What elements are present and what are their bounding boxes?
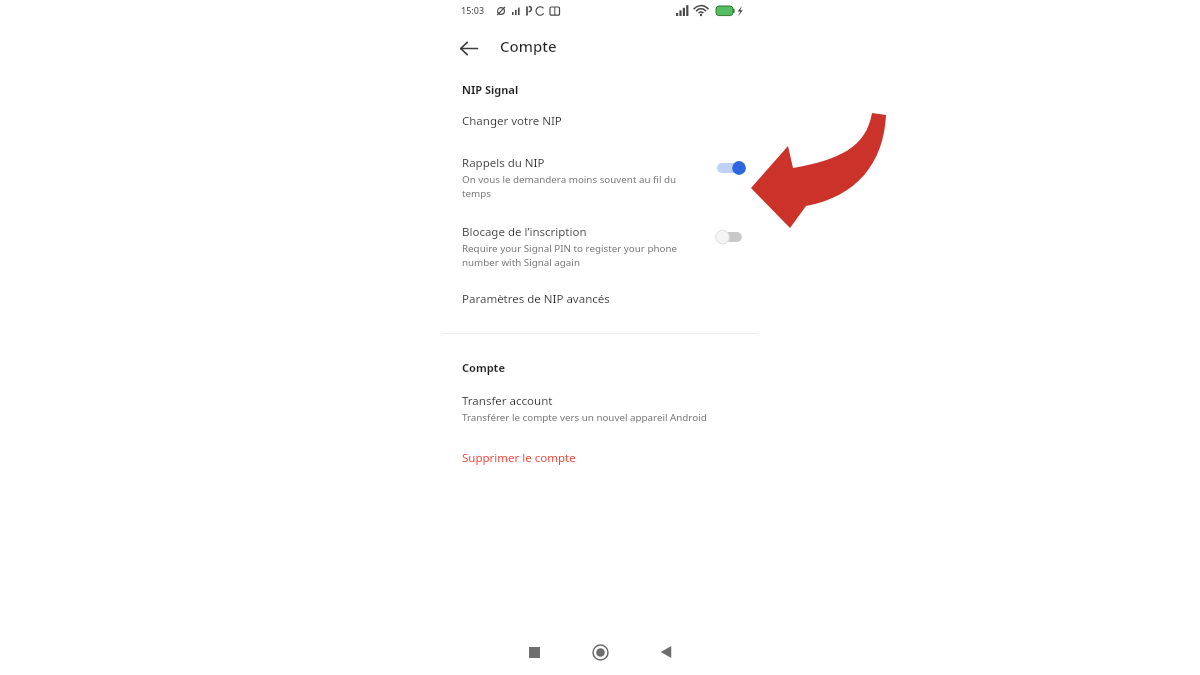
- button[interactable]: Back: [652, 638, 680, 666]
- button[interactable]: Supprimer le compte: [440, 428, 760, 472]
- button[interactable]: Transfer account: [440, 375, 760, 428]
- button[interactable]: Blocage de l’inscription: [440, 204, 760, 273]
- button[interactable]: Home: [586, 638, 614, 666]
- staticText: Compte: [462, 360, 505, 375]
- staticText: Transférer le compte vers un nouvel appa…: [462, 411, 707, 424]
- staticText: Transfer account: [462, 393, 553, 409]
- staticText: Blocage de l’inscription: [462, 224, 587, 240]
- staticText: Require your Signal PIN to register your…: [462, 242, 707, 269]
- staticText: Paramètres de NIP avancés: [462, 291, 610, 307]
- staticText: Compte: [500, 36, 557, 56]
- staticText: Supprimer le compte: [462, 450, 576, 466]
- button[interactable]: Back: [449, 29, 487, 67]
- staticText: NIP Signal: [462, 82, 519, 97]
- button[interactable]: Paramètres de NIP avancés: [440, 273, 760, 311]
- button[interactable]: Recent apps: [520, 638, 548, 666]
- staticText: 15:03: [461, 4, 485, 16]
- staticText: Rappels du NIP: [462, 155, 545, 171]
- staticText: On vous le demandera moins souvent au fi…: [462, 173, 707, 200]
- button[interactable]: Changer votre NIP: [440, 97, 760, 133]
- staticText: Changer votre NIP: [462, 113, 562, 129]
- button[interactable]: Rappels du NIP: [440, 133, 760, 204]
